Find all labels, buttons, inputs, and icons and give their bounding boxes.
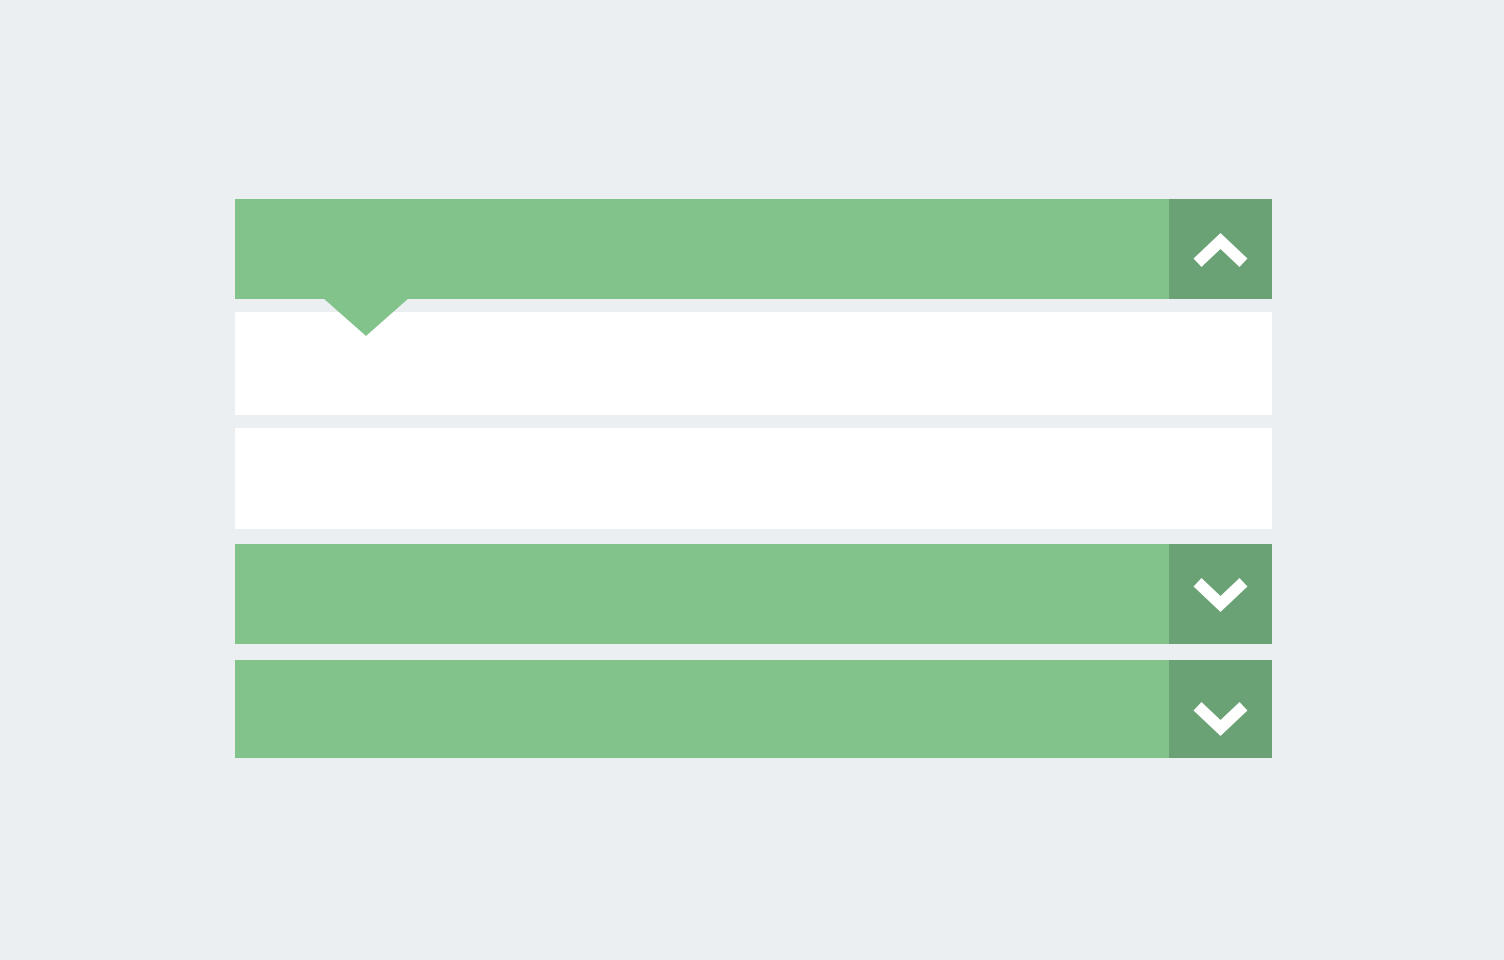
button[interactable]: Collapse group [235,199,1272,299]
button[interactable]: Expand group [235,544,1272,644]
button[interactable] [235,312,1272,415]
button[interactable]: Collapse group [1169,199,1272,299]
button[interactable]: Expand group [235,660,1272,758]
button[interactable]: Expand group [1169,660,1272,758]
button[interactable]: Expand group [1169,544,1272,644]
